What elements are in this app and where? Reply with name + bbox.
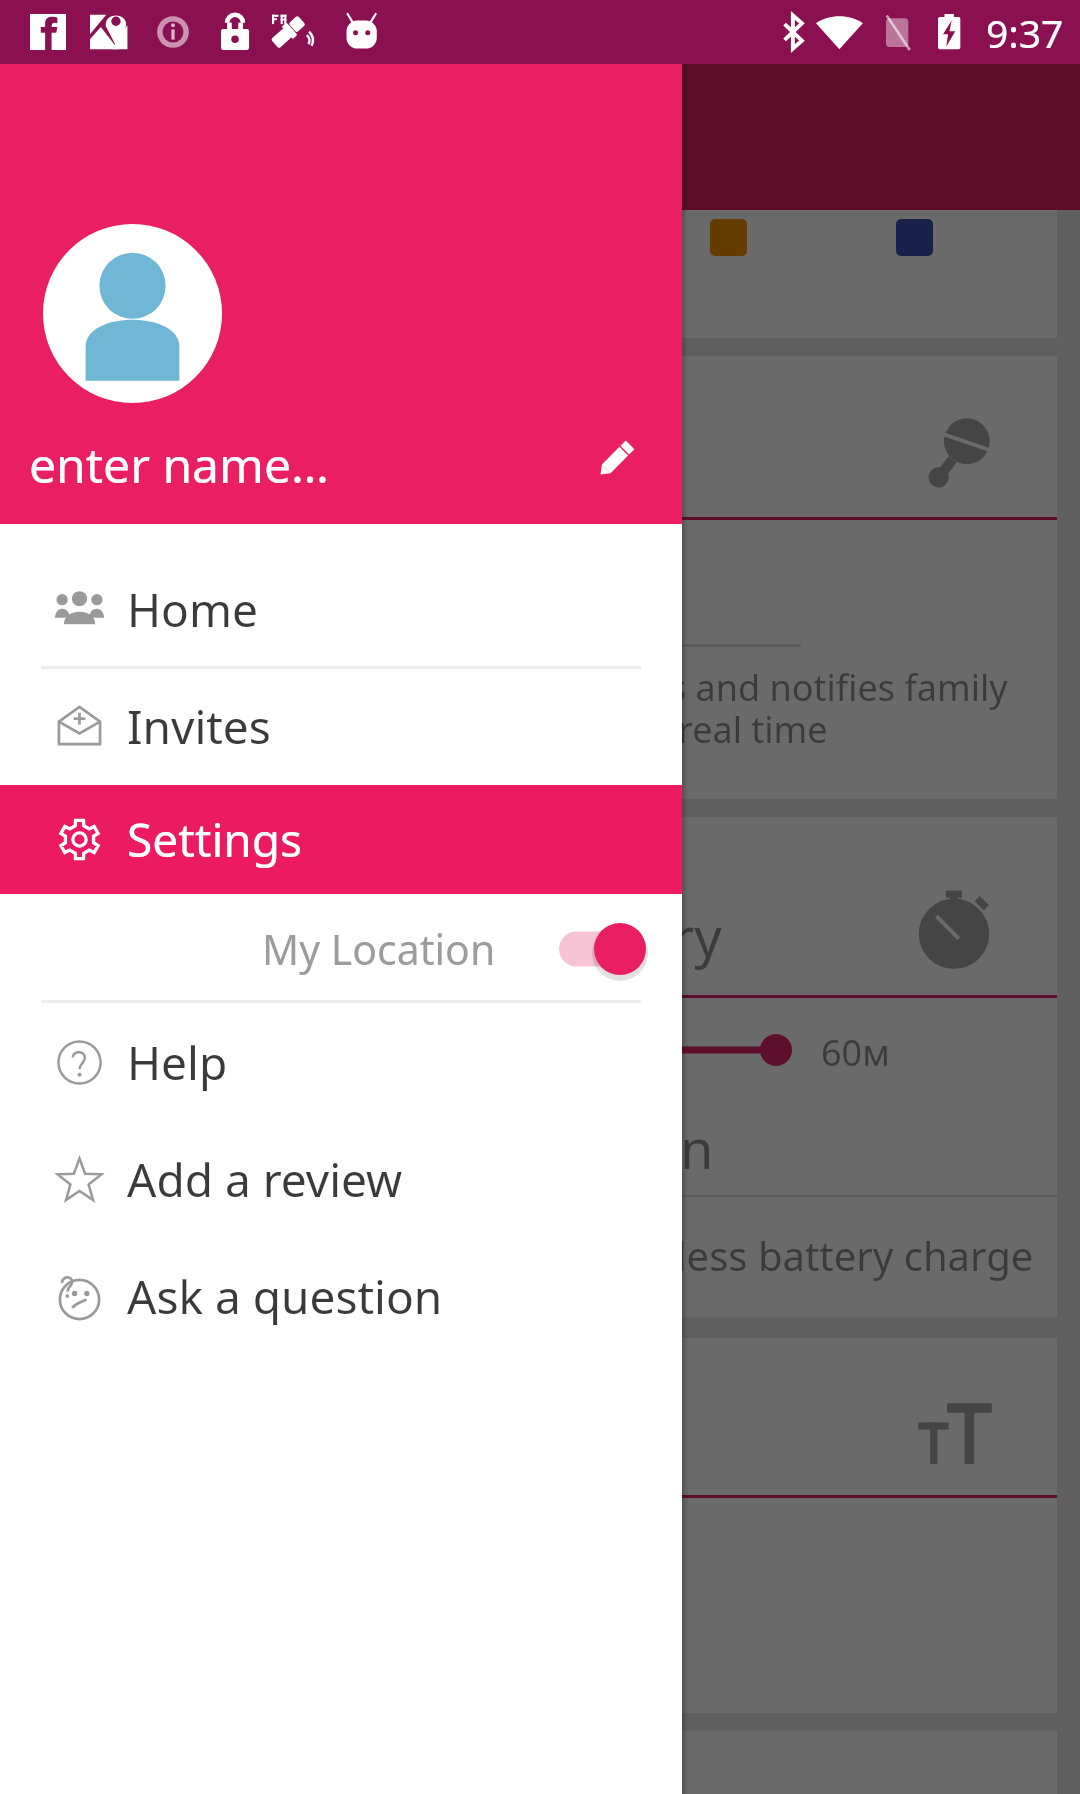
button[interactable]: enter name…: [0, 64, 682, 524]
button[interactable]: Home: [0, 551, 682, 668]
staticText: Add a review: [127, 1148, 403, 1211]
staticText: Settings: [127, 808, 303, 871]
staticText: Home: [127, 578, 258, 641]
button[interactable]: My Location: [0, 894, 682, 1004]
staticText: n: [680, 1111, 714, 1185]
staticText: Help: [127, 1031, 228, 1094]
staticText: s and notifies family: [669, 663, 1008, 712]
button[interactable]: Settings: [0, 785, 682, 894]
button[interactable]: Help: [0, 1004, 682, 1121]
button[interactable]: Invites: [0, 668, 682, 785]
staticText: Ask a question: [127, 1265, 443, 1328]
staticText: real time: [678, 705, 828, 754]
staticText: enter name…: [29, 432, 329, 497]
button[interactable]: Edit name: [592, 436, 639, 483]
staticText: My Location: [262, 921, 496, 977]
staticText: 9:37: [986, 6, 1064, 59]
staticText: 60м: [821, 1028, 890, 1077]
staticText: ns less battery charge: [622, 1228, 1034, 1282]
staticText: ry: [672, 899, 722, 973]
staticText: Invites: [127, 695, 271, 758]
button[interactable]: Add a review: [0, 1121, 682, 1238]
button[interactable]: Ask a question: [0, 1238, 682, 1355]
